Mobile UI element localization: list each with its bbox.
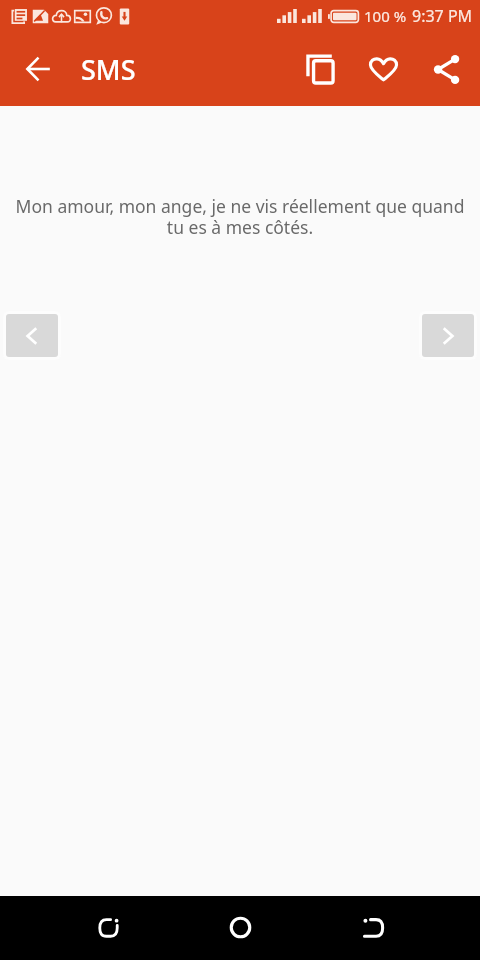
staticText: Mon amour, mon ange, je ne vis réellemen… bbox=[9, 194, 471, 239]
button[interactable]: Recent apps bbox=[343, 897, 403, 957]
staticText: SMS bbox=[81, 51, 136, 88]
button[interactable]: Home bbox=[210, 897, 270, 957]
staticText: 100 % bbox=[364, 6, 407, 26]
button[interactable]: Add to favourites bbox=[362, 48, 405, 91]
button[interactable]: Previous message bbox=[6, 314, 58, 357]
staticText: 9:37 PM bbox=[412, 5, 473, 27]
button[interactable]: Copy bbox=[297, 46, 340, 89]
button[interactable]: Navigate up bbox=[16, 47, 59, 90]
button[interactable]: Share bbox=[426, 48, 469, 91]
button[interactable]: Next message bbox=[422, 314, 474, 357]
button[interactable]: Back bbox=[78, 897, 138, 957]
